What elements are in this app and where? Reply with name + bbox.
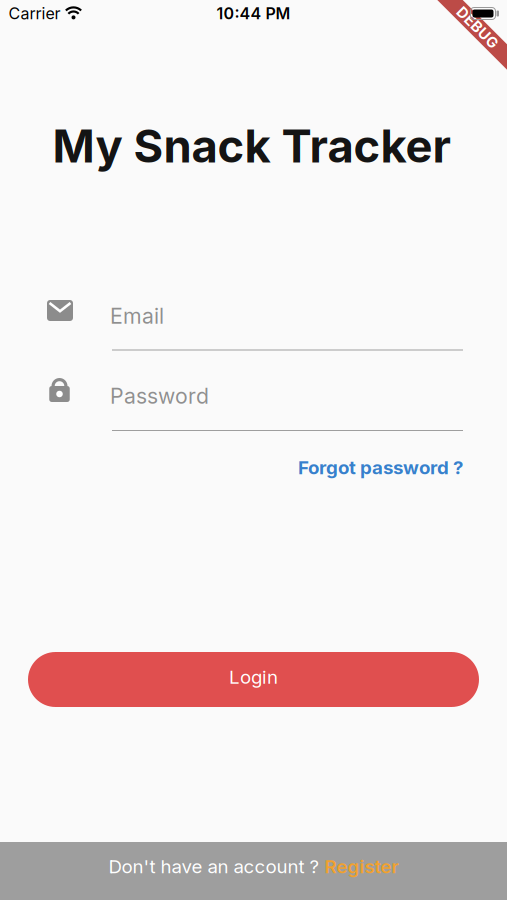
button[interactable]: Register <box>324 855 398 877</box>
staticText: Forgot password ? <box>298 456 463 478</box>
button[interactable]: Forgot password ? <box>298 456 463 478</box>
button[interactable]: Login <box>28 652 479 707</box>
staticText: DEBUG <box>451 19 503 36</box>
staticText: Carrier <box>8 4 60 23</box>
staticText: Login <box>229 666 278 688</box>
staticText: 10:44 PM <box>216 4 290 23</box>
staticText: Email <box>110 303 164 329</box>
button[interactable]: Password <box>0 358 507 430</box>
button[interactable]: Email <box>0 279 507 349</box>
staticText: Don't have an account ? <box>108 855 324 877</box>
staticText: Password <box>110 383 209 409</box>
staticText: My Snack Tracker <box>52 119 450 173</box>
staticText: Register <box>324 855 398 877</box>
